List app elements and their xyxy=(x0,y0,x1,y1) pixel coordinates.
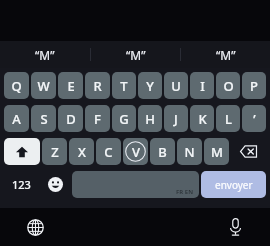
button[interactable]: envoyer xyxy=(201,171,266,198)
button[interactable]: E xyxy=(58,72,83,99)
button[interactable]: Change language xyxy=(20,212,50,242)
staticText: N xyxy=(184,143,195,161)
staticText: F xyxy=(94,110,101,128)
staticText: B xyxy=(158,143,167,161)
staticText: J xyxy=(174,110,178,128)
button[interactable]: J xyxy=(164,105,188,132)
button[interactable]: N xyxy=(177,138,202,165)
button[interactable]: X xyxy=(69,138,94,165)
button[interactable]: O xyxy=(216,72,240,99)
button[interactable]: Backspace xyxy=(231,138,266,165)
staticText: “M” xyxy=(216,47,236,63)
button[interactable]: C xyxy=(96,138,121,165)
staticText: C xyxy=(104,143,113,161)
staticText: envoyer xyxy=(215,178,253,192)
button[interactable]: H xyxy=(138,105,162,132)
button[interactable]: M xyxy=(204,138,229,165)
button[interactable]: Emoji xyxy=(41,171,70,198)
button[interactable]: I xyxy=(190,72,214,99)
staticText: E xyxy=(67,77,75,95)
staticText: “M” xyxy=(126,47,146,63)
button[interactable]: K xyxy=(190,105,214,132)
staticText: Q xyxy=(11,77,22,95)
button[interactable]: W xyxy=(31,72,56,99)
button[interactable]: U xyxy=(164,72,188,99)
staticText: FR EN xyxy=(176,188,194,196)
button[interactable]: F xyxy=(85,105,110,132)
staticText: O xyxy=(223,77,234,95)
staticText: K xyxy=(198,110,207,128)
staticText: R xyxy=(93,77,102,95)
button[interactable]: D xyxy=(58,105,83,132)
staticText: 123 xyxy=(12,177,31,192)
staticText: G xyxy=(119,110,129,128)
button[interactable]: P xyxy=(242,72,266,99)
button[interactable]: Q xyxy=(4,72,29,99)
staticText: S xyxy=(40,110,48,128)
button[interactable]: Space xyxy=(72,171,199,198)
staticText: Z xyxy=(51,143,59,161)
staticText: T xyxy=(120,77,128,95)
staticText: U xyxy=(171,77,181,95)
button[interactable]: G xyxy=(112,105,136,132)
staticText: X xyxy=(78,143,86,161)
button[interactable]: A xyxy=(4,105,29,132)
button[interactable]: S xyxy=(31,105,56,132)
staticText: H xyxy=(145,110,155,128)
button[interactable]: ’ xyxy=(242,105,266,132)
button[interactable]: Voice input xyxy=(220,212,250,242)
staticText: V xyxy=(132,143,140,161)
staticText: L xyxy=(225,110,232,128)
button[interactable]: T xyxy=(112,72,136,99)
staticText: M xyxy=(211,143,223,161)
staticText: A xyxy=(12,110,21,128)
staticText: “M” xyxy=(35,47,55,63)
button[interactable]: “M” xyxy=(91,41,180,68)
staticText: W xyxy=(37,77,50,95)
button[interactable]: “M” xyxy=(0,41,90,68)
staticText: P xyxy=(250,77,258,95)
staticText: I xyxy=(200,77,205,95)
button[interactable]: B xyxy=(150,138,175,165)
button[interactable]: Y xyxy=(138,72,162,99)
button[interactable]: V xyxy=(123,138,148,165)
staticText: ’ xyxy=(253,110,256,128)
staticText: D xyxy=(66,110,76,128)
button[interactable]: Z xyxy=(42,138,67,165)
button[interactable]: Shift xyxy=(4,138,40,165)
button[interactable]: 123 xyxy=(4,171,39,198)
button[interactable]: L xyxy=(216,105,240,132)
button[interactable]: R xyxy=(85,72,110,99)
staticText: Y xyxy=(146,77,154,95)
button[interactable]: “M” xyxy=(181,41,270,68)
